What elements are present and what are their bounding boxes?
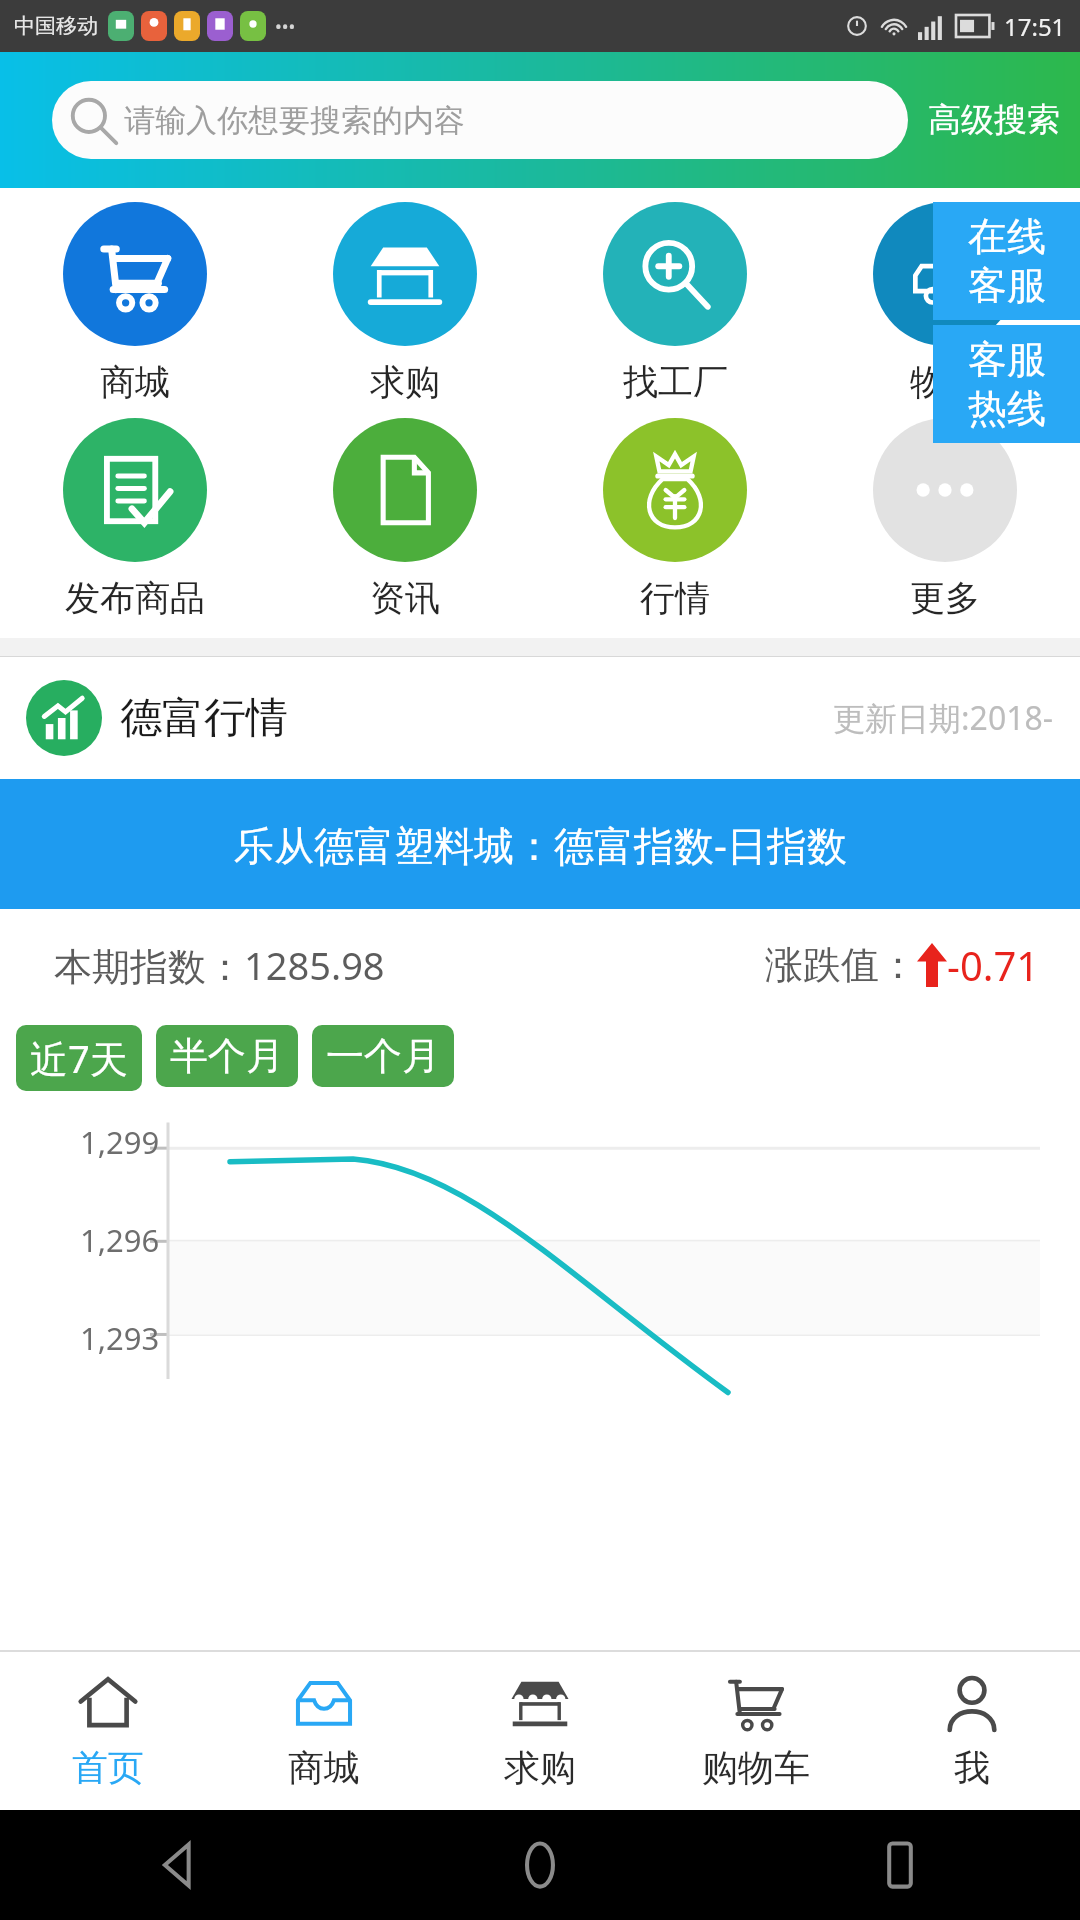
- staticText: •••: [275, 14, 296, 39]
- staticText: 热线: [968, 384, 1046, 433]
- staticText: 发布商品: [65, 576, 205, 620]
- staticText: 更多: [910, 576, 980, 620]
- button[interactable]: 客服热线: [933, 325, 1080, 443]
- button[interactable]: Recents: [720, 1810, 1080, 1920]
- button[interactable]: 物流: [810, 198, 1080, 408]
- staticText: 客服: [968, 335, 1046, 384]
- staticText: 求购: [370, 360, 440, 404]
- button[interactable]: 半个月: [156, 1025, 298, 1087]
- staticText: 高级搜索: [928, 99, 1060, 141]
- staticText: 半个月: [170, 1032, 284, 1080]
- button[interactable]: 行情: [540, 414, 810, 624]
- button[interactable]: 在线客服: [933, 202, 1080, 320]
- button[interactable]: 购物车: [648, 1652, 864, 1810]
- button[interactable]: 资讯: [270, 414, 540, 624]
- button[interactable]: 商城: [216, 1652, 432, 1810]
- staticText: 商城: [100, 360, 170, 404]
- staticText: 客服: [968, 261, 1046, 310]
- staticText: 行情: [640, 576, 710, 620]
- staticText: 中国移动: [14, 13, 98, 39]
- button[interactable]: Home: [360, 1810, 720, 1920]
- staticText: 物流: [910, 360, 980, 404]
- staticText: 德富行情: [120, 692, 288, 745]
- staticText: 1,296: [80, 1219, 160, 1261]
- button[interactable]: 商城: [0, 198, 270, 408]
- button[interactable]: 更多: [810, 414, 1080, 624]
- button[interactable]: 首页: [0, 1652, 216, 1810]
- staticText: 我: [954, 1745, 990, 1790]
- button[interactable]: 高级搜索: [928, 99, 1060, 141]
- button[interactable]: Back: [0, 1810, 360, 1920]
- staticText: 求购: [504, 1745, 576, 1790]
- button[interactable]: 近7天: [16, 1025, 142, 1091]
- staticText: 商城: [288, 1745, 360, 1790]
- button[interactable]: 请输入你想要搜索的内容: [52, 81, 908, 159]
- button[interactable]: 乐从德富塑料城：德富指数-日指数: [0, 779, 1080, 909]
- staticText: 1,293: [80, 1317, 160, 1359]
- staticText: 17:51: [1004, 10, 1066, 43]
- staticText: 购物车: [702, 1745, 810, 1790]
- staticText: 乐从德富塑料城：德富指数-日指数: [234, 817, 847, 872]
- staticText: 资讯: [370, 576, 440, 620]
- button[interactable]: 发布商品: [0, 414, 270, 624]
- button[interactable]: 德富行情: [0, 657, 1080, 779]
- staticText: 首页: [72, 1745, 144, 1790]
- button[interactable]: 一个月: [312, 1025, 454, 1087]
- button[interactable]: 求购: [270, 198, 540, 408]
- staticText: 在线: [968, 212, 1046, 261]
- staticText: 请输入你想要搜索的内容: [124, 101, 465, 140]
- button[interactable]: 我: [864, 1652, 1080, 1810]
- staticText: 本期指数：1285.98: [54, 939, 385, 991]
- staticText: 1,299: [80, 1121, 160, 1163]
- button[interactable]: 求购: [432, 1652, 648, 1810]
- staticText: 近7天: [30, 1032, 128, 1084]
- staticText: -0.71: [947, 938, 1040, 992]
- staticText: 一个月: [326, 1032, 440, 1080]
- staticText: 找工厂: [623, 360, 728, 404]
- staticText: 更新日期:2018-: [833, 696, 1054, 740]
- staticText: 涨跌值：: [765, 941, 917, 989]
- button[interactable]: 找工厂: [540, 198, 810, 408]
